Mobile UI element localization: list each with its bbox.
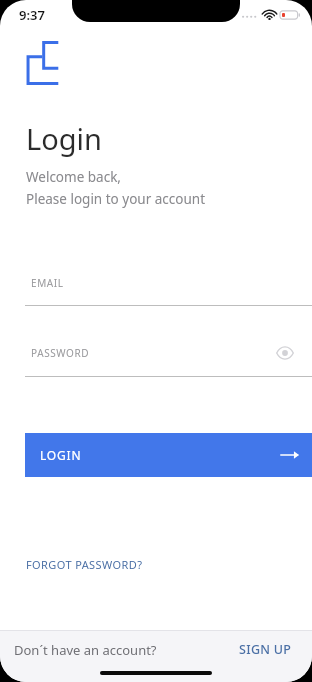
staticText: FORGOT PASSWORD? [26, 557, 143, 572]
staticText: EMAIL [31, 276, 64, 290]
button[interactable]: PASSWORD [0, 342, 312, 377]
button[interactable]: EMAIL [0, 276, 312, 306]
staticText: Welcome back, [26, 168, 121, 186]
staticText: PASSWORD [31, 346, 90, 360]
button[interactable]: FORGOT PASSWORD? [20, 553, 149, 576]
button[interactable]: SIGN UP [233, 637, 298, 662]
staticText: Login [26, 119, 102, 158]
button[interactable]: Show password [274, 342, 296, 364]
staticText: Don´t have an account? [14, 641, 157, 659]
staticText: Please login to your account [26, 190, 206, 208]
button[interactable]: LOGIN [25, 433, 312, 477]
staticText: 9:37 [19, 6, 45, 24]
staticText: LOGIN [40, 447, 82, 463]
staticText: SIGN UP [239, 641, 292, 658]
